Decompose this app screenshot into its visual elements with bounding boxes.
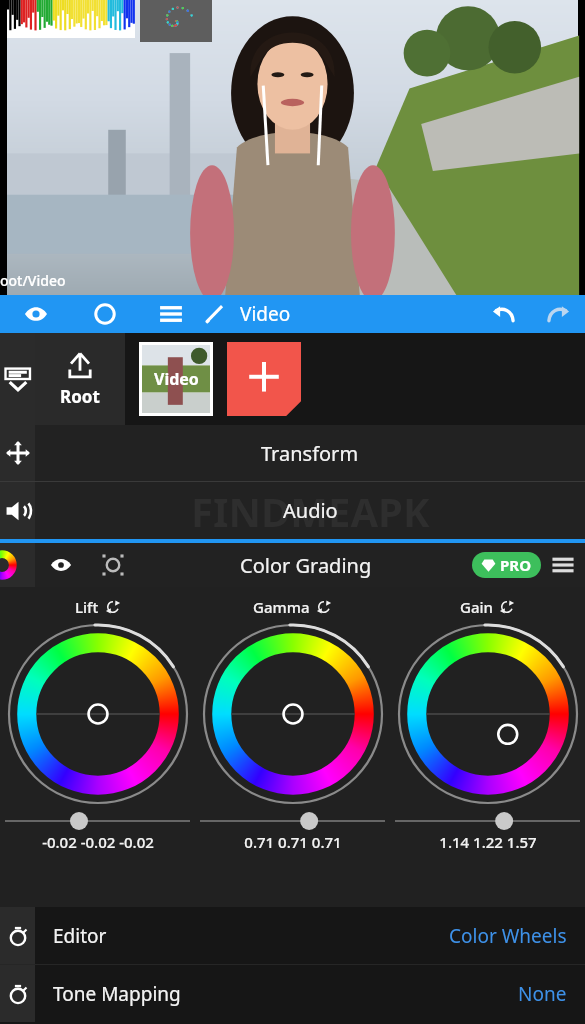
staticText: oot/Video: [0, 271, 66, 290]
button[interactable]: Video: [204, 295, 473, 333]
staticText: Video: [240, 301, 291, 327]
button[interactable]: Tone Mapping: [35, 965, 585, 1022]
button[interactable]: Preview visibility: [0, 295, 72, 333]
button[interactable]: Gamma slider: [198, 811, 387, 831]
button[interactable]: Select region: [87, 543, 139, 587]
staticText: Tone Mapping: [53, 981, 181, 1007]
button[interactable]: Layers: [0, 333, 35, 425]
button[interactable]: Lift color wheel: [7, 623, 189, 805]
staticText: Lift: [75, 597, 99, 617]
button[interactable]: Mask: [72, 295, 138, 333]
button[interactable]: FINDMEAPK: [35, 482, 585, 539]
button[interactable]: Add layer: [227, 342, 301, 416]
button[interactable]: Gain slider: [393, 811, 582, 831]
staticText: FINDMEAPK: [191, 484, 430, 538]
staticText: -0.02 -0.02 -0.02: [42, 832, 154, 852]
staticText: None: [518, 981, 567, 1007]
staticText: Root: [60, 385, 100, 408]
staticText: Gamma: [253, 597, 310, 617]
staticText: Transform: [261, 440, 359, 467]
button[interactable]: More options: [541, 543, 585, 587]
button[interactable]: Editor: [35, 907, 585, 964]
button[interactable]: Root: [35, 333, 125, 425]
button[interactable]: Gamma color wheel: [202, 623, 384, 805]
button[interactable]: Transform options: [0, 425, 35, 481]
button[interactable]: Reset Lift: [105, 599, 121, 615]
button[interactable]: Color Grading: [139, 543, 472, 587]
staticText: 0.71 0.71 0.71: [244, 832, 342, 852]
staticText: Video: [154, 368, 199, 390]
button[interactable]: Color grading: [0, 543, 35, 587]
staticText: Editor: [53, 923, 107, 949]
button[interactable]: Gain color wheel: [397, 623, 579, 805]
button[interactable]: Audio options: [0, 482, 35, 539]
staticText: PRO: [500, 555, 532, 575]
staticText: Color Grading: [240, 552, 372, 579]
button[interactable]: Keyframe Tone Mapping: [0, 965, 35, 1022]
button[interactable]: Redo: [533, 295, 585, 333]
button[interactable]: Undo: [473, 295, 533, 333]
staticText: Color Wheels: [449, 923, 567, 949]
staticText: 1.14 1.22 1.57: [439, 832, 537, 852]
button[interactable]: Keyframe Editor: [0, 907, 35, 964]
staticText: Audio: [283, 497, 338, 524]
button[interactable]: Lift slider: [3, 811, 192, 831]
button[interactable]: Menu: [138, 295, 204, 333]
staticText: Gain: [460, 597, 493, 617]
button[interactable]: PRO: [472, 552, 541, 578]
button[interactable]: Reset Gamma: [316, 599, 332, 615]
button[interactable]: Toggle visibility: [35, 543, 87, 587]
button[interactable]: Video clip: [142, 345, 210, 413]
button[interactable]: Transform: [35, 425, 585, 481]
button[interactable]: Reset Gain: [499, 599, 515, 615]
